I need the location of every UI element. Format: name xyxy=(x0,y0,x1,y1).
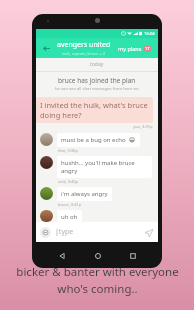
button[interactable]: i'm always angry xyxy=(40,187,152,207)
button[interactable]: hushh... you'll make bruce angry xyxy=(40,156,152,184)
staticText: you, 3:01p xyxy=(133,124,153,129)
staticText: who's coming.. xyxy=(57,281,138,297)
staticText: bicker & banter with everyone xyxy=(16,264,179,280)
staticText: avengers united xyxy=(57,40,111,50)
button[interactable]: Back xyxy=(55,249,68,262)
staticText: I invited the hulk, what's bruce doing h… xyxy=(40,100,149,120)
staticText: bruce, 3:41p xyxy=(58,202,82,207)
button[interactable]: I invited the hulk, what's bruce doing h… xyxy=(36,97,153,129)
button[interactable]: uh oh xyxy=(40,210,152,222)
staticText: my plans xyxy=(118,45,142,52)
staticText: 16:04 xyxy=(144,31,155,37)
staticText: thor, 3:36p xyxy=(58,148,78,153)
staticText: bruce has joined the plan xyxy=(58,76,136,85)
button[interactable]: Recents xyxy=(126,249,139,262)
staticText: must be a bug on echo 😁 xyxy=(61,136,136,144)
staticText: he can see all chat messages from here o… xyxy=(55,86,139,92)
button[interactable]: my plans xyxy=(116,43,153,54)
staticText: uh oh xyxy=(61,213,78,219)
button[interactable]: Add attachment xyxy=(40,227,51,238)
button[interactable]: Home xyxy=(91,249,104,262)
button[interactable]: must be a bug on echo 😁 xyxy=(40,133,152,153)
staticText: i'm always angry xyxy=(61,190,108,198)
staticText: today xyxy=(90,61,104,68)
staticText: hushh... you'll make bruce angry xyxy=(61,159,148,175)
staticText: nick, 3:40p xyxy=(58,179,79,184)
button[interactable]: Send xyxy=(143,227,154,238)
button[interactable]: Back xyxy=(41,43,52,54)
staticText: nick, captain, bruce + 4 xyxy=(62,51,106,56)
staticText: 17 xyxy=(145,46,150,51)
staticText: |type xyxy=(55,227,143,237)
